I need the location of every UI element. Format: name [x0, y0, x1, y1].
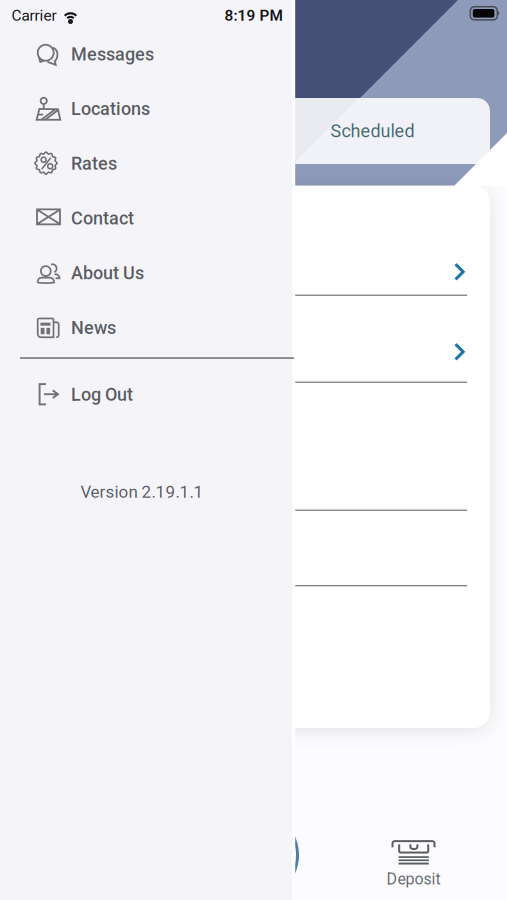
button[interactable]: Contact: [0, 191, 293, 245]
staticText: Contact: [71, 208, 134, 229]
staticText: Scheduled: [330, 120, 414, 142]
button[interactable]: Log Out: [0, 367, 293, 421]
staticText: About Us: [71, 262, 144, 284]
staticText: Locations: [71, 98, 150, 119]
staticText: Version 2.19.1.1: [80, 482, 203, 502]
staticText: News: [71, 317, 116, 338]
staticText: Messages: [71, 44, 154, 65]
button[interactable]: Rates: [0, 137, 293, 191]
button[interactable]: Scheduled: [255, 98, 490, 164]
staticText: Deposit: [386, 870, 440, 888]
button[interactable]: Select frequency: [445, 340, 469, 364]
button[interactable]: About Us: [0, 246, 293, 300]
staticText: Carrier: [11, 6, 56, 24]
button[interactable]: Messages: [0, 27, 293, 81]
button[interactable]: Deposit: [375, 834, 451, 892]
button[interactable]: Transfer: [209, 811, 297, 899]
button[interactable]: News: [0, 301, 293, 355]
button[interactable]: Select account: [445, 260, 469, 284]
staticText: Log Out: [71, 384, 133, 405]
staticText: 8:19 PM: [224, 6, 282, 24]
button[interactable]: Locations: [0, 82, 293, 136]
staticText: Rates: [71, 153, 117, 174]
